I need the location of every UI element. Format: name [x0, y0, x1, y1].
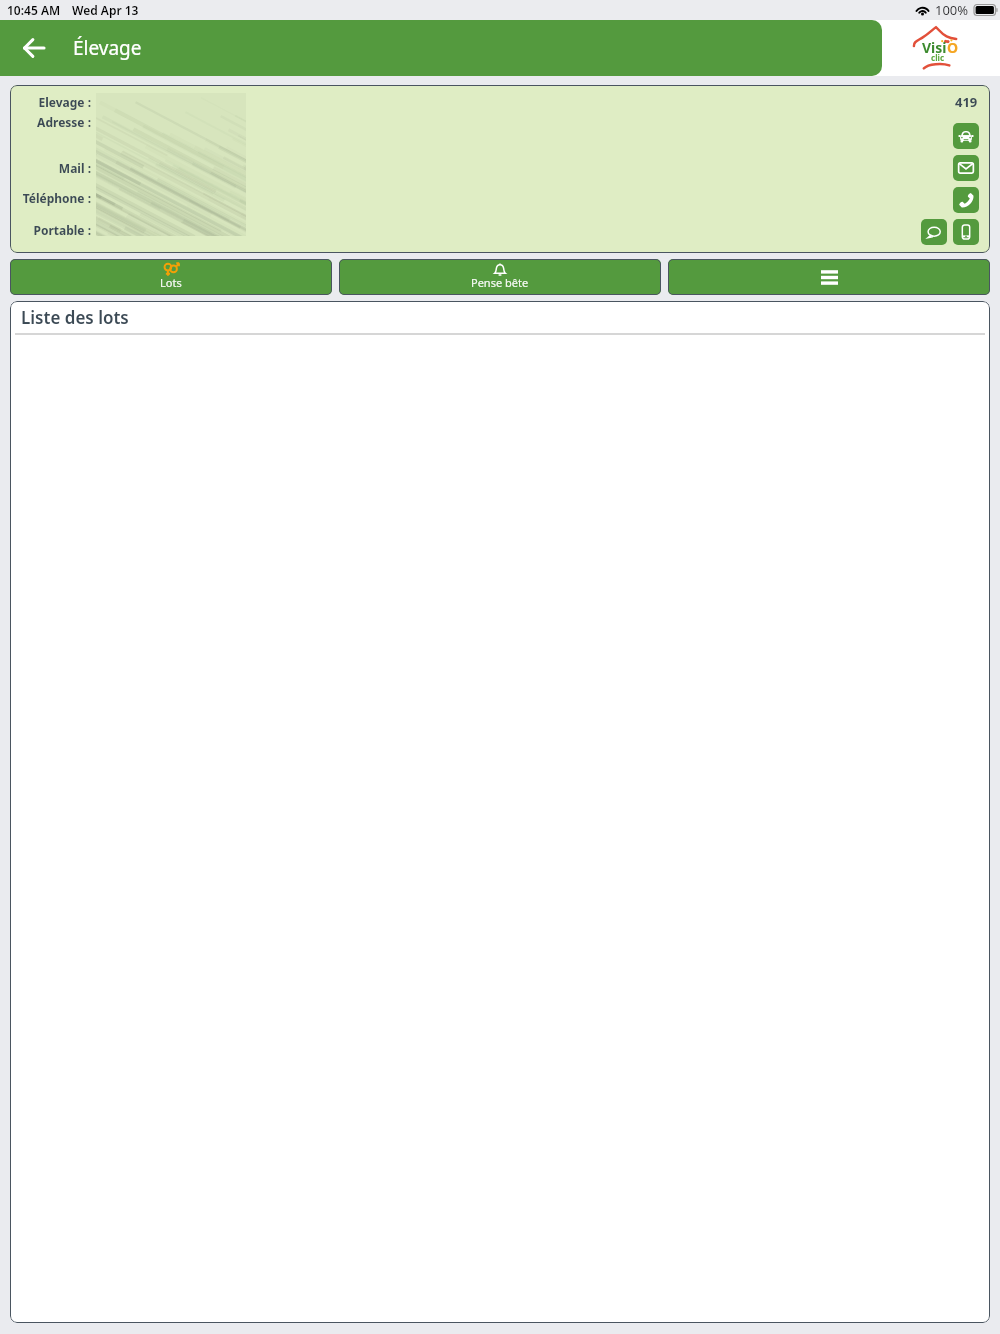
staticText: 100%	[935, 1, 969, 19]
staticText: O	[947, 38, 959, 57]
button[interactable]: Lots	[10, 259, 332, 295]
button[interactable]: Mail	[953, 155, 979, 181]
staticText: Adresse :	[37, 114, 91, 130]
staticText: Mail :	[58, 160, 91, 176]
staticText: 419	[955, 93, 978, 111]
button[interactable]: SMS	[921, 219, 947, 245]
staticText: clic	[931, 52, 945, 63]
button[interactable]: Menu	[668, 259, 990, 295]
staticText: Élevage	[73, 35, 142, 61]
staticText: Liste des lots	[21, 306, 129, 329]
staticText: Téléphone :	[22, 190, 91, 206]
staticText: 10:45 AM	[7, 2, 61, 18]
staticText: Portable :	[33, 222, 91, 238]
staticText: Lots	[160, 275, 182, 290]
button[interactable]: Téléphone	[953, 187, 979, 213]
staticText: Elevage :	[38, 94, 91, 110]
staticText: Visi	[922, 38, 947, 57]
staticText: Wed Apr 13	[72, 2, 139, 18]
button[interactable]: Itinéraire	[953, 123, 979, 149]
button[interactable]: Back	[14, 28, 54, 68]
staticText: Pense bête	[471, 275, 529, 290]
button[interactable]: Pense bête	[339, 259, 661, 295]
button[interactable]: Mobile	[953, 219, 979, 245]
